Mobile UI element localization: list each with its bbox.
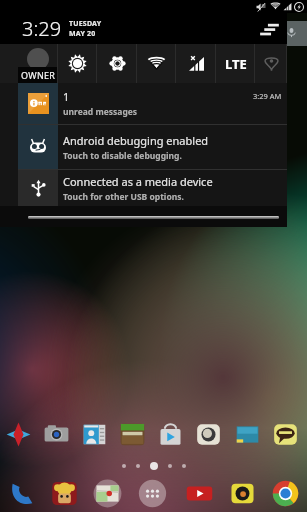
button[interactable]: Contacts xyxy=(81,421,108,448)
button[interactable]: Talk xyxy=(272,421,299,448)
button[interactable]: Quick setting xyxy=(18,44,58,83)
button[interactable]: Camera xyxy=(43,421,70,448)
staticText: TUESDAY xyxy=(69,19,102,29)
button[interactable]: Quick setting xyxy=(97,44,137,83)
staticText: 1 xyxy=(63,89,70,104)
button[interactable]: Quick setting xyxy=(255,44,287,83)
staticText: 3:29 xyxy=(22,15,62,42)
staticText: unread messages xyxy=(63,106,138,118)
staticText: Touch to disable debugging. xyxy=(63,150,182,162)
button[interactable]: Quick setting xyxy=(58,44,97,83)
button[interactable]: Quick setting xyxy=(176,44,216,83)
button[interactable]: Clash of Clans xyxy=(50,479,79,508)
staticText: MAY 20 xyxy=(69,29,96,39)
button[interactable]: 1 xyxy=(0,83,287,124)
button[interactable]: App xyxy=(195,421,222,448)
staticText: LTE xyxy=(225,55,247,73)
button[interactable]: Camera xyxy=(228,479,257,508)
button[interactable]: All apps xyxy=(138,479,167,508)
button[interactable]: Voice search xyxy=(286,21,307,46)
button[interactable]: Android debugging enabled xyxy=(0,125,287,169)
button[interactable]: Notes xyxy=(234,421,261,448)
button[interactable]: Maps xyxy=(93,479,122,508)
button[interactable]: Quick setting xyxy=(216,44,255,83)
staticText: 3:29 AM xyxy=(253,91,282,101)
button[interactable]: YouTube xyxy=(185,479,214,508)
button[interactable]: Phone xyxy=(8,479,37,508)
button[interactable]: Play Store xyxy=(157,421,184,448)
button[interactable]: Clear all notifications xyxy=(257,16,283,42)
button[interactable]: Nova Launcher xyxy=(5,421,32,448)
staticText: OWNER xyxy=(21,69,56,81)
button[interactable]: Minecraft xyxy=(119,421,146,448)
staticText: Connected as a media device xyxy=(63,174,213,189)
button[interactable]: Chrome xyxy=(271,479,300,508)
staticText: Touch for other USB options. xyxy=(63,191,184,203)
button[interactable]: Connected as a media device xyxy=(0,170,287,206)
staticText: Android debugging enabled xyxy=(63,133,209,148)
button[interactable]: Quick setting xyxy=(137,44,176,83)
